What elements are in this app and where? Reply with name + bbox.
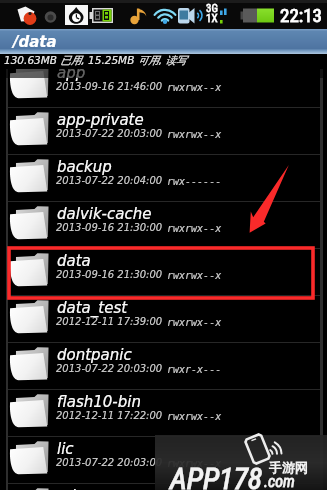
button[interactable]: misc bbox=[0, 484, 327, 490]
button[interactable]: app bbox=[0, 61, 327, 108]
staticText: rwxrwx--x bbox=[167, 411, 222, 423]
staticText: 2013-09-16 21:30:00 bbox=[56, 269, 163, 281]
staticText: 1X bbox=[206, 12, 218, 25]
staticText: data bbox=[57, 252, 91, 269]
staticText: misc bbox=[57, 487, 92, 490]
staticText: 2013-07-22 20:03:00 bbox=[56, 363, 163, 375]
button[interactable]: data_test bbox=[0, 296, 327, 343]
staticText: lic bbox=[57, 440, 74, 457]
staticText: 2013-07-22 20:03:00 bbox=[56, 457, 163, 469]
staticText: 2013-07-22 20:03:00 bbox=[56, 128, 163, 140]
staticText: 2013-09-16 21:46:00 bbox=[56, 81, 163, 93]
staticText: rwxrwx--x bbox=[167, 317, 222, 329]
staticText: 2012-12-11 17:22:00 bbox=[56, 410, 163, 422]
staticText: 2012-12-11 17:39:00 bbox=[56, 316, 163, 328]
staticText: rwxrwx--x bbox=[167, 270, 222, 282]
staticText: rwxrwx--x bbox=[167, 223, 222, 235]
staticText: data_test bbox=[57, 299, 128, 316]
staticText: rwxr-x--- bbox=[167, 364, 222, 376]
staticText: backup bbox=[57, 158, 112, 175]
staticText: app-private bbox=[57, 111, 144, 128]
button[interactable]: dontpanic bbox=[0, 343, 327, 390]
staticText: 手游网 bbox=[269, 459, 308, 475]
button[interactable]: lic bbox=[0, 437, 327, 484]
staticText: app bbox=[57, 64, 86, 81]
staticText: /data bbox=[13, 33, 57, 50]
staticText: flash10-bin bbox=[57, 393, 141, 410]
button[interactable]: /data bbox=[0, 29, 327, 54]
button[interactable]: backup bbox=[0, 155, 327, 202]
staticText: rwxrwx--x bbox=[167, 82, 222, 94]
staticText: .com bbox=[264, 472, 295, 490]
button[interactable]: flash10-bin bbox=[0, 390, 327, 437]
button[interactable]: data bbox=[0, 249, 327, 296]
staticText: 22:13 bbox=[280, 4, 322, 26]
staticText: rwx------ bbox=[167, 176, 222, 188]
staticText: 130.63MB 已用, 15.25MB 可用, 读写 bbox=[4, 54, 187, 67]
button[interactable]: dalvik-cache bbox=[0, 202, 327, 249]
staticText: 3G bbox=[206, 2, 218, 15]
staticText: rwxrwx--x bbox=[167, 129, 222, 141]
staticText: dalvik-cache bbox=[57, 205, 152, 222]
staticText: 2013-07-22 20:04:00 bbox=[56, 175, 163, 187]
button[interactable]: app-private bbox=[0, 108, 327, 155]
staticText: rwxrwx--x bbox=[167, 458, 222, 470]
staticText: 2013-09-16 21:30:00 bbox=[56, 222, 163, 234]
staticText: APP178 bbox=[170, 461, 263, 490]
staticText: dontpanic bbox=[57, 346, 132, 363]
